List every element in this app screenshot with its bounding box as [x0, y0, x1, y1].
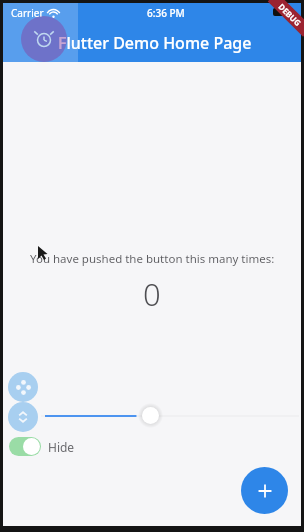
- staticText: 0: [143, 273, 161, 315]
- button[interactable]: Move: [8, 372, 38, 402]
- staticText: DEBUG: [276, 1, 304, 28]
- staticText: 6:36 PM: [147, 6, 185, 20]
- staticText: You have pushed the button this many tim…: [30, 251, 275, 267]
- button[interactable]: Hide: [9, 437, 75, 456]
- button[interactable]: Expand: [8, 402, 38, 432]
- button[interactable]: Alarm: [21, 16, 67, 62]
- staticText: Hide: [48, 439, 75, 455]
- button[interactable]: Slider: [41, 407, 299, 425]
- staticText: Carrier: [11, 6, 44, 20]
- staticText: Flutter Demo Home Page: [58, 32, 252, 54]
- button[interactable]: Add: [241, 467, 288, 514]
